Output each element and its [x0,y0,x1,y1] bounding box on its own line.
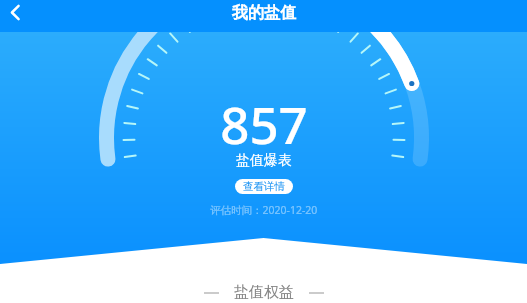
button[interactable]: 查看详情 [235,179,293,194]
button[interactable]: Back [0,0,32,25]
staticText: 盐值爆表 [236,152,292,170]
staticText: 我的盐值 [232,3,296,23]
staticText: 857 [220,89,308,158]
staticText: 评估时间：2020-12-20 [210,203,318,217]
staticText: 查看详情 [243,180,285,193]
staticText: 盐值权益 [234,283,294,302]
